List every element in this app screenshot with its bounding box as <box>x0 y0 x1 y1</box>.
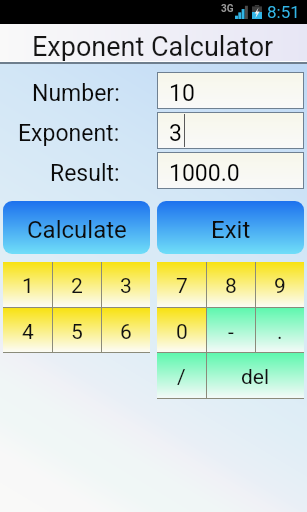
button[interactable]: . <box>256 308 304 352</box>
button[interactable]: 10 <box>158 73 303 108</box>
staticText: 8:51 <box>267 2 300 22</box>
staticText: Exponent: <box>18 120 120 147</box>
button[interactable]: 4 <box>3 308 52 352</box>
staticText: del <box>241 365 270 390</box>
staticText: - <box>228 320 234 345</box>
button[interactable]: 7 <box>157 262 206 307</box>
staticText: 1000.0 <box>169 160 240 187</box>
button[interactable]: 5 <box>53 308 101 352</box>
button[interactable]: 1000.0 <box>158 153 303 188</box>
staticText: Number: <box>32 80 120 107</box>
button[interactable]: del <box>207 353 304 398</box>
staticText: 8 <box>225 274 237 299</box>
staticText: 9 <box>274 274 286 299</box>
staticText: / <box>177 365 186 390</box>
staticText: Exponent Calculator <box>32 31 274 63</box>
staticText: 1 <box>22 274 34 299</box>
staticText: 3 <box>120 274 132 299</box>
button[interactable]: Exit <box>157 201 304 254</box>
staticText: 2 <box>71 274 83 299</box>
staticText: 3G <box>221 3 234 15</box>
staticText: 10 <box>169 80 195 107</box>
staticText: Result: <box>50 160 120 187</box>
button[interactable]: 3 <box>158 113 303 148</box>
staticText: 5 <box>71 320 83 345</box>
button[interactable]: - <box>207 308 255 352</box>
button[interactable]: 3 <box>102 262 150 307</box>
button[interactable]: 9 <box>256 262 304 307</box>
button[interactable]: 2 <box>53 262 101 307</box>
button[interactable]: / <box>157 353 206 398</box>
staticText: 7 <box>176 274 188 299</box>
staticText: Calculate <box>27 216 127 244</box>
staticText: Exit <box>211 216 251 244</box>
button[interactable]: Calculate <box>3 201 150 254</box>
other: Battery <box>252 5 262 19</box>
staticText: 6 <box>120 320 132 345</box>
button[interactable]: 8 <box>207 262 255 307</box>
staticText: 3 <box>169 120 182 147</box>
staticText: 0 <box>176 320 188 345</box>
other: Signal <box>235 5 248 19</box>
button[interactable]: 6 <box>102 308 150 352</box>
button[interactable]: 0 <box>157 308 206 352</box>
staticText: 4 <box>22 320 34 345</box>
button[interactable]: 1 <box>3 262 52 307</box>
staticText: . <box>277 320 283 345</box>
